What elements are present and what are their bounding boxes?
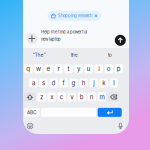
staticText: l [113, 79, 114, 87]
button[interactable]: g [69, 79, 78, 88]
staticText: j [93, 79, 94, 87]
staticText: z [40, 93, 43, 101]
button[interactable]: to [92, 50, 128, 60]
button[interactable]: i [94, 64, 103, 73]
staticText: w [36, 65, 41, 72]
button[interactable]: Shopping research [47, 11, 101, 21]
button[interactable]: q [24, 64, 33, 73]
button[interactable]: “The” [21, 50, 57, 60]
button[interactable]: e [44, 64, 53, 73]
staticText: v [70, 93, 73, 101]
staticText: b [80, 93, 84, 101]
staticText: new laptop [41, 37, 61, 42]
staticText: k [102, 79, 105, 87]
button[interactable]: p [114, 64, 123, 73]
staticText: m [99, 93, 104, 101]
button[interactable]: Add attachment [26, 33, 37, 44]
staticText: t [68, 65, 70, 72]
staticText: c [60, 93, 64, 101]
staticText: y [77, 65, 80, 72]
button[interactable]: n [88, 92, 96, 101]
staticText: u [87, 65, 91, 72]
staticText: d [51, 79, 55, 87]
button[interactable]: Shift [24, 92, 36, 101]
button[interactable]: s [39, 79, 48, 88]
staticText: Help me find a powerful [41, 29, 87, 34]
button[interactable]: y [74, 64, 83, 73]
button[interactable]: c [57, 92, 66, 101]
button[interactable]: Delete [108, 92, 119, 101]
staticText: n [90, 93, 94, 101]
staticText: f [62, 79, 64, 87]
button[interactable]: o [104, 64, 113, 73]
button[interactable]: v [67, 92, 76, 101]
button[interactable]: m [98, 92, 106, 101]
staticText: q [26, 65, 30, 72]
button[interactable]: Send message [115, 35, 126, 46]
button[interactable]: z [37, 92, 46, 101]
button[interactable]: Emoji keyboard [24, 120, 35, 131]
button[interactable]: x [47, 92, 56, 101]
button[interactable]: k [99, 79, 108, 88]
button[interactable]: f [59, 79, 68, 88]
button[interactable]: d [49, 79, 58, 88]
button[interactable]: ABC [24, 108, 40, 117]
staticText: a [32, 79, 35, 87]
button[interactable]: a [29, 79, 38, 88]
button[interactable]: r [54, 64, 63, 73]
staticText: e [46, 65, 50, 72]
button[interactable]: u [84, 64, 93, 73]
staticText: x [50, 93, 53, 101]
staticText: to [108, 52, 112, 58]
staticText: “The” [33, 52, 46, 58]
button[interactable]: j [89, 79, 98, 88]
button[interactable]: b [78, 92, 86, 101]
staticText: the [71, 52, 78, 58]
staticText: i [98, 65, 99, 72]
staticText: p [117, 65, 121, 72]
button[interactable]: Return [98, 108, 122, 117]
button[interactable]: t [64, 64, 73, 73]
staticText: o [107, 65, 111, 72]
button[interactable]: l [109, 79, 118, 88]
staticText: g [72, 79, 76, 87]
staticText: h [82, 79, 86, 87]
button[interactable]: Dictate [115, 120, 126, 131]
button[interactable]: w [34, 64, 43, 73]
staticText: ABC [27, 109, 37, 115]
staticText: s [42, 79, 45, 87]
staticText: Shopping research [58, 13, 92, 18]
button[interactable]: h [79, 79, 88, 88]
button[interactable]: the [57, 50, 92, 60]
staticText: r [57, 65, 59, 72]
